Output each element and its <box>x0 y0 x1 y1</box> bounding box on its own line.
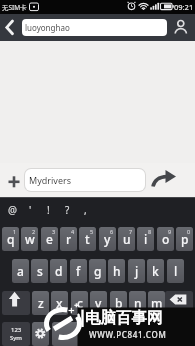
button[interactable]: h <box>108 259 125 283</box>
button[interactable] <box>2 291 30 315</box>
button[interactable]: l <box>167 259 184 283</box>
staticText: j <box>135 263 139 279</box>
staticText: z <box>38 295 44 311</box>
staticText: w <box>25 231 35 247</box>
button[interactable]: ? <box>59 200 76 219</box>
staticText: l <box>174 263 178 279</box>
staticText: m <box>151 295 163 311</box>
staticText: q <box>7 231 15 247</box>
button[interactable]: s <box>31 259 48 283</box>
staticText: 1 <box>13 228 17 235</box>
staticText: ! <box>47 203 50 217</box>
staticText: h <box>113 263 121 279</box>
button[interactable]: x <box>51 291 68 315</box>
button[interactable]: o <box>157 227 174 251</box>
staticText: o <box>162 231 170 247</box>
button[interactable]: f <box>70 259 87 283</box>
staticText: 6 <box>110 228 114 235</box>
button[interactable]: u <box>118 227 135 251</box>
button[interactable] <box>2 166 26 194</box>
button[interactable]: e <box>41 227 58 251</box>
staticText: 无SIM卡 <box>2 3 27 12</box>
button[interactable]: @ <box>4 200 21 219</box>
staticText: a <box>17 263 24 279</box>
staticText: 0 <box>187 228 191 235</box>
button[interactable] <box>165 291 193 315</box>
staticText: g <box>94 263 102 279</box>
button[interactable]: m <box>148 291 165 315</box>
button[interactable]: g <box>89 259 106 283</box>
button[interactable] <box>2 322 30 346</box>
staticText: 8 <box>148 228 152 235</box>
staticText: Sym <box>10 334 22 342</box>
staticText: WWW.PC841.COM <box>89 329 167 340</box>
button[interactable]: c <box>71 291 88 315</box>
staticText: x <box>56 295 63 311</box>
staticText: 电脑百事网 <box>85 308 163 328</box>
staticText: k <box>152 263 159 279</box>
staticText: e <box>46 231 53 247</box>
button[interactable]: ! <box>40 200 57 219</box>
staticText: 09:21 <box>174 2 194 12</box>
button[interactable]: n <box>129 291 146 315</box>
staticText: t <box>85 231 90 247</box>
staticText: 9 <box>168 228 172 235</box>
button[interactable]: i <box>137 227 154 251</box>
button[interactable]: z <box>32 291 49 315</box>
staticText: 2 <box>32 228 36 235</box>
button[interactable]: k <box>147 259 164 283</box>
staticText: v <box>95 295 102 311</box>
button[interactable]: b <box>110 291 127 315</box>
button[interactable]: , <box>77 200 94 219</box>
button[interactable]: luoyonghao <box>22 19 167 36</box>
staticText: luoyonghao <box>25 22 70 33</box>
button[interactable]: q <box>2 227 19 251</box>
button[interactable] <box>0 14 22 41</box>
staticText: 3 <box>52 228 56 235</box>
staticText: 123 <box>11 326 22 334</box>
staticText: b <box>115 295 123 311</box>
staticText: r <box>66 231 72 247</box>
staticText: y <box>104 231 111 247</box>
staticText: n <box>134 295 142 311</box>
staticText: , <box>84 203 87 217</box>
staticText: u <box>123 231 131 247</box>
button[interactable]: t <box>79 227 96 251</box>
button[interactable] <box>150 166 180 194</box>
button[interactable]: p <box>176 227 193 251</box>
staticText: 4 <box>71 228 75 235</box>
button[interactable]: ' <box>22 200 39 219</box>
button[interactable] <box>169 14 195 41</box>
staticText: d <box>55 263 63 279</box>
button[interactable] <box>52 322 138 346</box>
staticText: @ <box>8 203 17 217</box>
button[interactable]: y <box>99 227 116 251</box>
staticText: 5 <box>90 228 94 235</box>
staticText: f <box>76 263 81 279</box>
staticText: ' <box>29 203 32 217</box>
button[interactable]: d <box>50 259 67 283</box>
button[interactable]: v <box>90 291 107 315</box>
staticText: i <box>144 231 148 247</box>
staticText: s <box>37 263 43 279</box>
button[interactable] <box>32 322 49 346</box>
staticText: Mydrivers <box>29 174 72 186</box>
staticText: c <box>77 295 83 311</box>
staticText: ? <box>65 203 70 217</box>
button[interactable]: j <box>128 259 145 283</box>
button[interactable]: r <box>60 227 77 251</box>
button[interactable] <box>141 322 193 346</box>
button[interactable]: w <box>21 227 38 251</box>
button[interactable]: a <box>12 259 29 283</box>
staticText: 7 <box>129 228 133 235</box>
button[interactable]: Mydrivers <box>24 168 146 192</box>
staticText: p <box>181 231 189 247</box>
